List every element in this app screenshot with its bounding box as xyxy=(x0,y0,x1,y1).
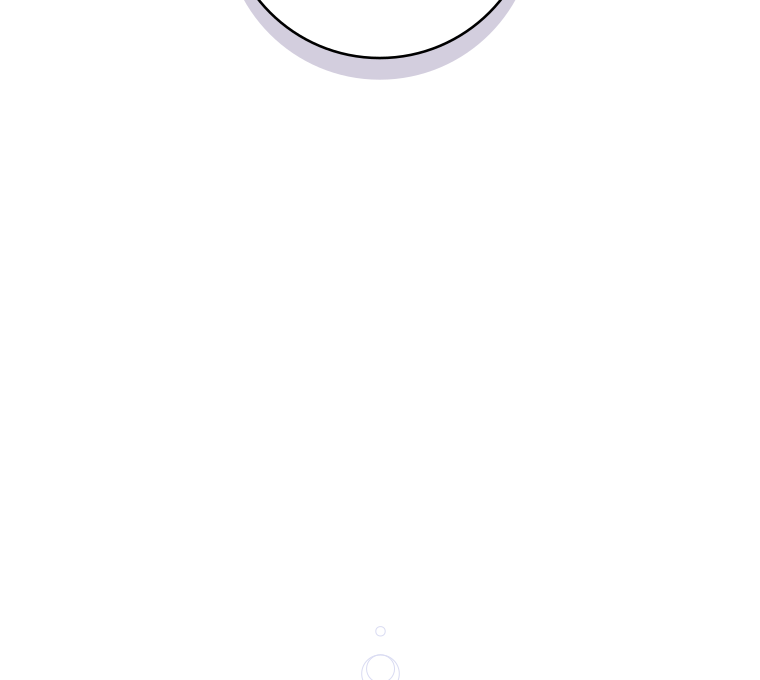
button[interactable]: Avatar xyxy=(0,0,760,680)
